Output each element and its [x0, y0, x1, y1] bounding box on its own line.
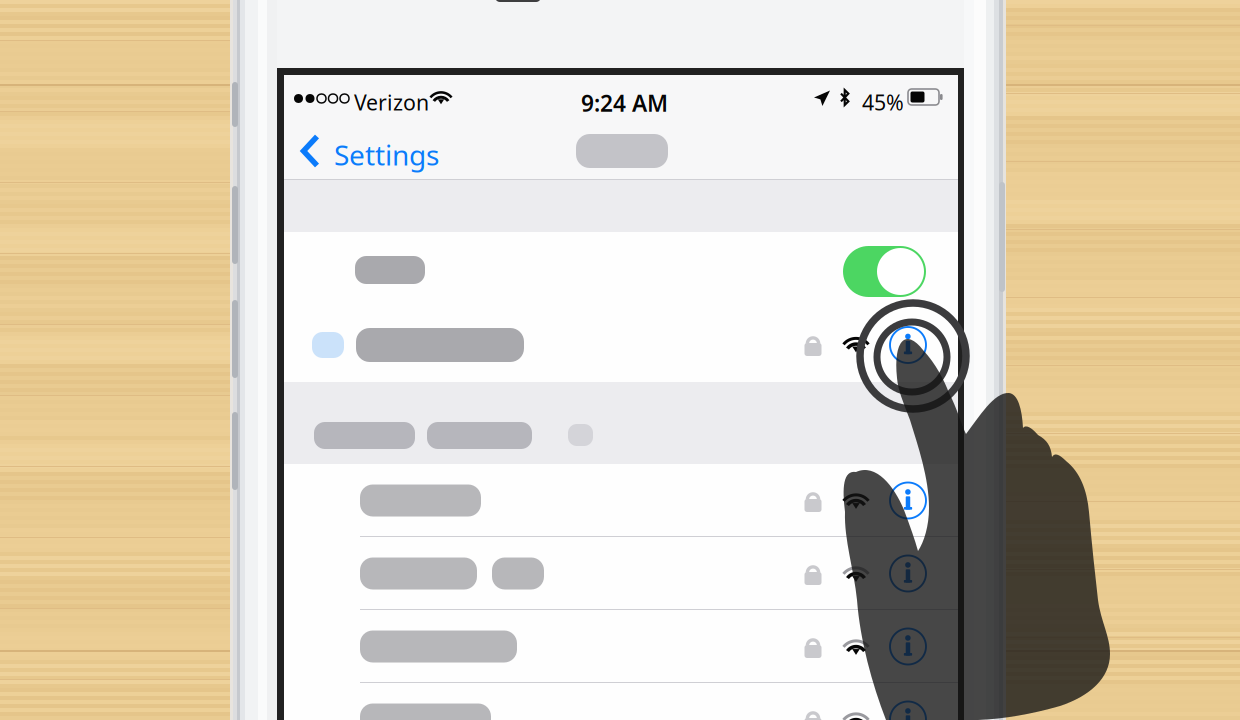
button[interactable] — [284, 683, 958, 720]
button[interactable] — [284, 232, 958, 308]
button[interactable] — [284, 537, 958, 610]
staticText: 9:24 AM — [581, 88, 668, 118]
staticText: 45% — [862, 88, 904, 116]
button[interactable] — [284, 464, 958, 537]
button[interactable]: Network details — [884, 549, 932, 597]
button[interactable]: Network details — [884, 321, 932, 369]
button[interactable] — [284, 610, 958, 683]
button[interactable]: Network details — [884, 476, 932, 524]
button[interactable]: Settings — [284, 125, 452, 177]
staticText: Verizon — [354, 88, 429, 116]
button[interactable]: Network details — [884, 622, 932, 670]
button[interactable]: Network details — [884, 695, 932, 720]
staticText: Settings — [334, 136, 439, 173]
button[interactable] — [284, 308, 958, 382]
